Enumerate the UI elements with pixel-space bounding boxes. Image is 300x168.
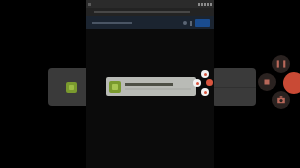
button[interactable]: Pause: [272, 55, 290, 73]
button[interactable]: Add marker top: [201, 70, 209, 78]
button[interactable]: Record indicator: [206, 79, 213, 86]
button[interactable]: [212, 68, 256, 106]
button[interactable]: Add marker left: [193, 79, 201, 87]
button[interactable]: Add marker bottom: [201, 88, 209, 96]
button[interactable]: Search: [183, 21, 187, 25]
button[interactable]: [195, 19, 210, 27]
button[interactable]: Stop recording: [258, 73, 276, 91]
button[interactable]: [48, 68, 90, 106]
button[interactable]: Screenshot: [272, 91, 290, 109]
button[interactable]: [106, 77, 196, 96]
button[interactable]: [86, 8, 214, 16]
button[interactable]: Record: [283, 72, 300, 94]
